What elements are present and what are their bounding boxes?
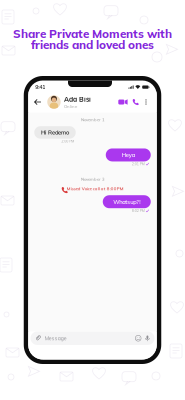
button[interactable]: More options — [142, 92, 150, 111]
staticText: Online — [64, 104, 77, 109]
button[interactable]: Ada Bisi — [47, 92, 91, 111]
staticText: Share Private Moments with — [13, 26, 172, 41]
staticText: Heya — [122, 151, 135, 158]
staticText: Whatsup?! — [113, 198, 140, 205]
staticText: 9:41 — [35, 84, 45, 90]
staticText: Hi Redemo — [41, 129, 69, 136]
staticText: November 3 — [81, 177, 104, 182]
staticText: friends and loved ones — [31, 37, 154, 52]
staticText: Message — [45, 335, 67, 341]
staticText: 2:01 PM — [132, 162, 145, 166]
button[interactable]: Message — [30, 331, 154, 345]
button[interactable]: Voice call — [129, 92, 142, 111]
staticText: November 1 — [81, 117, 104, 122]
button[interactable]: Video call — [117, 92, 129, 111]
button[interactable]: Back — [31, 92, 45, 111]
staticText: Ada Bisi — [64, 95, 91, 103]
staticText: 8:02 PM — [132, 209, 145, 213]
staticText: Missed Voice call at 8:00PM — [67, 186, 124, 191]
staticText: 2:00 PM — [61, 139, 74, 143]
